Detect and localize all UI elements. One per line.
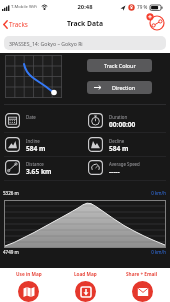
staticText: 3PASSES_14: Gokyo – Gokyo Ri bbox=[9, 40, 83, 47]
button[interactable]: Tracks bbox=[3, 15, 28, 33]
staticText: Track Colour bbox=[104, 62, 136, 69]
staticText: ----- bbox=[109, 167, 120, 176]
staticText: 0 km/h bbox=[130, 190, 166, 196]
button[interactable]: Duration bbox=[88, 113, 168, 135]
staticText: 20:48 bbox=[0, 3, 170, 11]
staticText: Load Map bbox=[74, 271, 97, 277]
staticText: Direction bbox=[112, 84, 136, 91]
staticText: Track Data bbox=[0, 19, 170, 28]
staticText: 00:00:00 bbox=[109, 120, 136, 129]
staticText: 584 m bbox=[109, 144, 129, 153]
button[interactable]: Track Colour bbox=[87, 59, 152, 72]
button[interactable]: Distance bbox=[5, 160, 85, 182]
button[interactable]: Use in Map bbox=[0, 268, 57, 302]
staticText: Decline bbox=[109, 138, 125, 144]
button[interactable]: Date bbox=[5, 113, 85, 135]
staticText: 5326 m bbox=[3, 190, 19, 196]
staticText: 0 km/h bbox=[130, 249, 166, 255]
button[interactable]: Share + Email bbox=[114, 268, 170, 302]
staticText: Distance bbox=[26, 161, 44, 167]
staticText: Duration bbox=[109, 114, 128, 120]
staticText: 3.65 km bbox=[26, 167, 52, 176]
staticText: Date bbox=[26, 114, 36, 120]
button[interactable]: 3PASSES_14: Gokyo – Gokyo Ri bbox=[4, 36, 166, 50]
staticText: Average Speed bbox=[109, 161, 140, 167]
button[interactable]: Direction bbox=[87, 81, 152, 94]
staticText: 584 m bbox=[26, 144, 46, 153]
staticText: 4749 m bbox=[3, 249, 19, 255]
button[interactable]: Decline bbox=[88, 137, 168, 159]
staticText: 79 % bbox=[137, 4, 148, 10]
staticText: Tracks bbox=[9, 20, 28, 29]
staticText: Incline bbox=[26, 138, 40, 144]
button[interactable]: Incline bbox=[5, 137, 85, 159]
staticText: T-Mobile WiFi bbox=[11, 4, 38, 10]
button[interactable]: Load Map bbox=[57, 268, 114, 302]
staticText: Share + Email bbox=[126, 271, 158, 277]
button[interactable]: Average Speed bbox=[88, 160, 168, 182]
staticText: Use in Map bbox=[16, 271, 42, 277]
button[interactable] bbox=[144, 15, 168, 33]
